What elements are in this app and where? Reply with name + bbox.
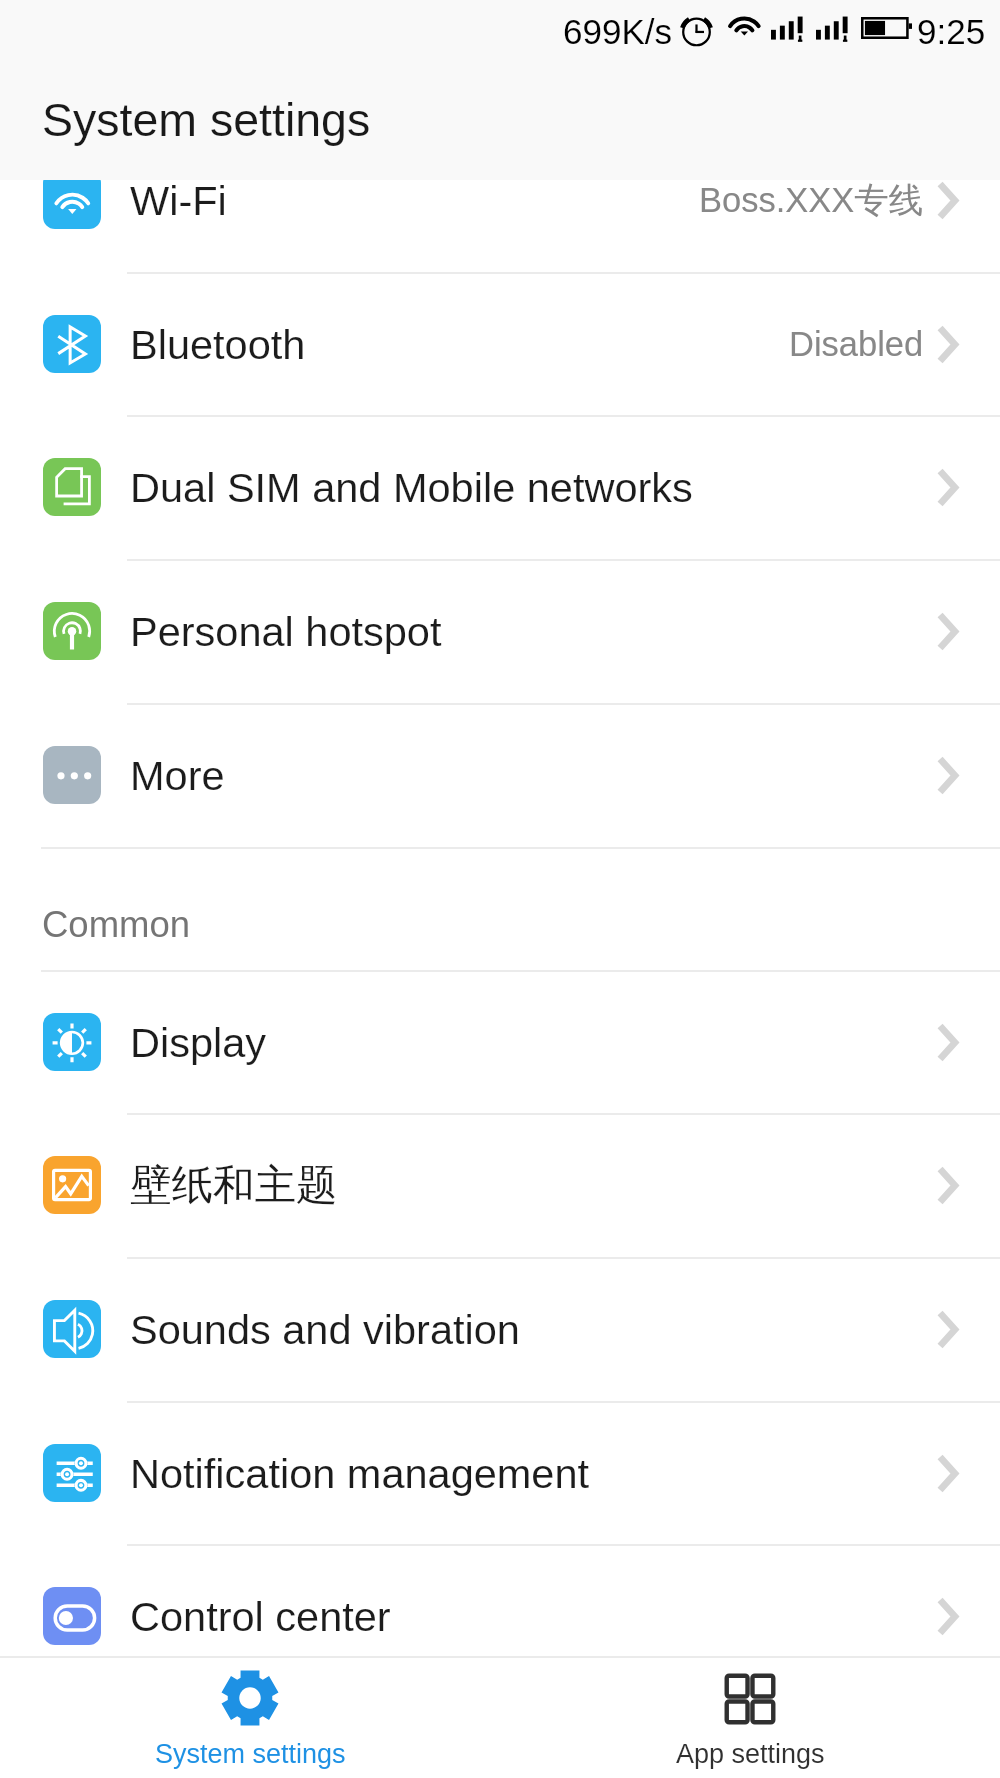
staticText: Wi-Fi	[130, 180, 227, 223]
staticText: Control center	[130, 1593, 391, 1639]
staticText: Boss.XXX专线	[699, 180, 924, 222]
staticText: 9:25	[917, 12, 986, 51]
staticText: Personal hotspot	[130, 608, 442, 654]
button[interactable]: App settings	[500, 1656, 1000, 1778]
staticText: 699K/s	[563, 12, 672, 51]
button[interactable]: Sounds and vibration	[0, 1257, 1000, 1401]
staticText: Bluetooth	[130, 321, 306, 367]
staticText: Dual SIM and Mobile networks	[130, 464, 693, 510]
button[interactable]: Dual SIM and Mobile networks	[0, 415, 1000, 559]
staticText: App settings	[676, 1739, 825, 1769]
button[interactable]: System settings	[0, 1656, 500, 1778]
staticText: Common	[42, 904, 191, 945]
staticText: More	[130, 752, 225, 798]
button[interactable]: Wi-Fi	[0, 180, 1000, 272]
button[interactable]: 壁纸和主题	[0, 1113, 1000, 1257]
staticText: System settings	[155, 1739, 346, 1769]
button[interactable]: More	[0, 703, 1000, 847]
button[interactable]: Notification management	[0, 1401, 1000, 1545]
staticText: Display	[130, 1019, 267, 1065]
staticText: Notification management	[130, 1450, 590, 1496]
button[interactable]: Bluetooth	[0, 272, 1000, 416]
staticText: System settings	[42, 94, 371, 146]
button[interactable]: Personal hotspot	[0, 559, 1000, 703]
staticText: 壁纸和主题	[130, 1159, 338, 1211]
button[interactable]: Control center	[0, 1544, 1000, 1656]
staticText: Disabled	[789, 325, 924, 364]
staticText: Sounds and vibration	[130, 1306, 520, 1352]
button[interactable]: Display	[0, 970, 1000, 1114]
